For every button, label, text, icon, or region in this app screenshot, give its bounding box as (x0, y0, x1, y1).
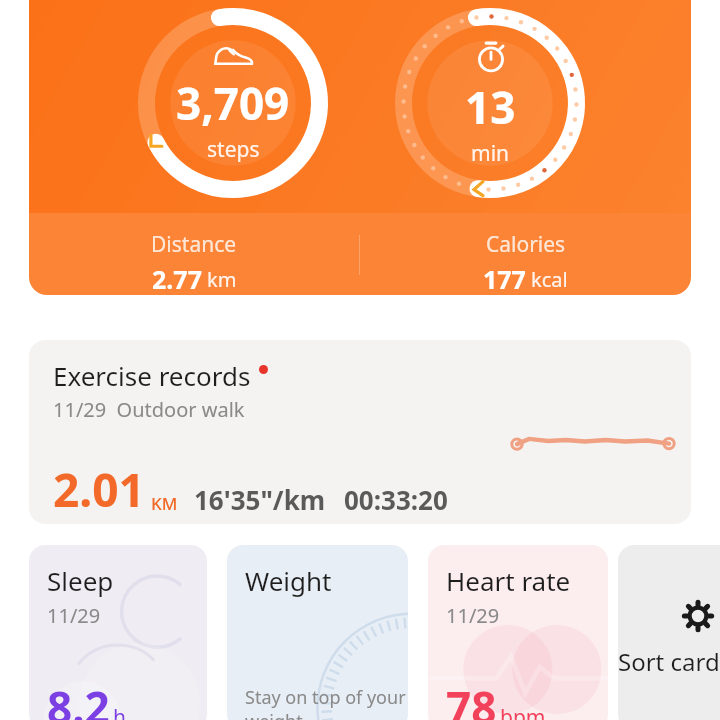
staticText: 2.01 (53, 458, 145, 521)
staticText: 00:33:20 (344, 482, 448, 517)
staticText: KM (151, 492, 178, 515)
staticText: 16'35"/km (194, 482, 326, 517)
staticText: km (207, 266, 237, 293)
other: Sort cards (679, 597, 717, 635)
staticText: 13 (465, 77, 516, 137)
staticText: min (471, 139, 510, 168)
staticText: 8.2 (47, 677, 110, 720)
other: Steps (212, 43, 254, 69)
button[interactable]: Weight (227, 545, 408, 720)
staticText: 3,709 (176, 73, 290, 133)
staticText: Heart rate (446, 563, 571, 598)
staticText: 177 (483, 262, 526, 295)
button[interactable]: Sort cards (618, 545, 720, 720)
staticText: Weight (245, 563, 332, 598)
staticText: bpm (500, 703, 546, 720)
staticText: 11/29 (47, 602, 101, 629)
staticText: Distance (151, 230, 237, 259)
staticText: Exercise records (53, 358, 251, 393)
button[interactable]: Heart rate (428, 545, 608, 720)
staticText: h (113, 703, 126, 720)
button[interactable]: Calories (360, 213, 691, 295)
staticText: Sleep (47, 563, 114, 598)
staticText: Sort cards (618, 645, 720, 678)
button[interactable]: Steps (29, 0, 691, 295)
button[interactable]: Exercise records (29, 340, 691, 524)
button[interactable]: Steps (138, 8, 328, 198)
staticText: Calories (486, 230, 566, 259)
button[interactable]: Distance (29, 213, 359, 295)
staticText: Stay on top of your weight (245, 685, 406, 720)
staticText: 11/29 Outdoor walk (53, 396, 245, 423)
button[interactable]: Sleep (29, 545, 207, 720)
staticText: steps (207, 135, 260, 164)
staticText: 2.77 (152, 262, 202, 295)
staticText: 11/29 (446, 602, 500, 629)
staticText: 78 (446, 677, 497, 720)
staticText: kcal (531, 266, 568, 293)
other: Active minutes (474, 39, 508, 73)
button[interactable]: Active minutes (395, 8, 585, 198)
